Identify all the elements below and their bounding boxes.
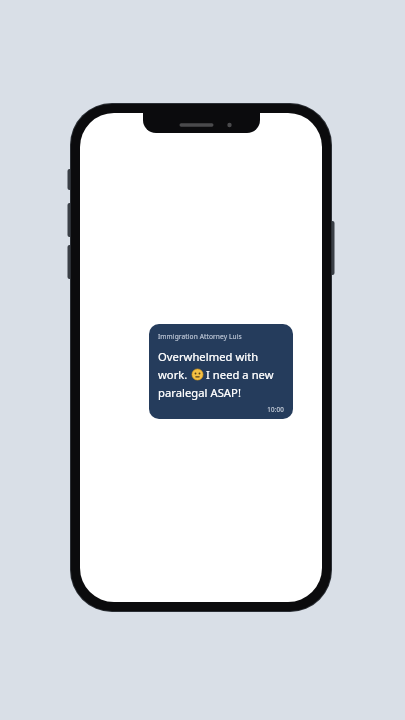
staticText: work. bbox=[158, 367, 188, 382]
staticText: Immigration Attorney Luis bbox=[158, 332, 242, 341]
button[interactable]: Immigration Attorney Luis bbox=[149, 324, 293, 419]
staticText: 10:00 bbox=[158, 405, 284, 413]
staticText: paralegal ASAP! bbox=[158, 385, 241, 400]
staticText: I need a new bbox=[206, 367, 274, 382]
staticText: Overwhelmed with bbox=[158, 349, 259, 364]
